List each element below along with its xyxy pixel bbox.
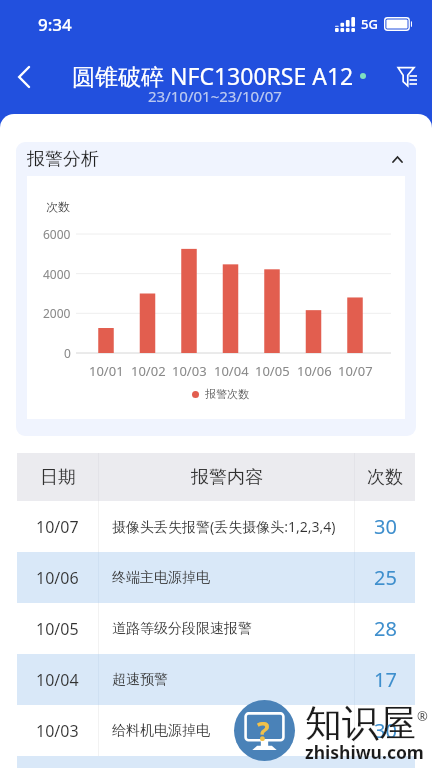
staticText: ® (417, 707, 428, 725)
staticText: 报警内容 (191, 466, 263, 489)
staticText: 次数 (46, 199, 70, 214)
staticText: 28 (374, 615, 397, 642)
staticText: 10/02 (131, 362, 166, 380)
staticText: 知识屋 (305, 700, 416, 747)
staticText: 2000 (43, 305, 71, 321)
button[interactable]: Back (2, 55, 46, 99)
staticText: 次数 (367, 466, 403, 489)
staticText: 4000 (43, 266, 71, 282)
button[interactable]: 10/07 (17, 501, 415, 552)
staticText: 10/04 (214, 362, 249, 380)
staticText: 终端主电源掉电 (112, 569, 210, 587)
staticText: 10/07 (338, 362, 373, 380)
button[interactable]: Collapse (384, 146, 410, 172)
staticText: 17 (374, 666, 397, 693)
staticText: 给料机电源掉电 (112, 722, 210, 740)
button[interactable]: 10/06 (17, 552, 415, 603)
staticText: 9:34 (38, 13, 72, 36)
staticText: 报警分析 (27, 148, 99, 171)
staticText: ? (257, 713, 270, 748)
staticText: 6000 (43, 226, 71, 242)
staticText: 30 (374, 513, 397, 540)
staticText: 10/06 (36, 567, 79, 589)
staticText: 25 (374, 564, 397, 591)
staticText: 圆锥破碎 NFC1300RSE A12 (72, 60, 354, 91)
staticText: 报警次数 (205, 387, 249, 401)
staticText: zhishiwu.com (305, 740, 424, 764)
staticText: 5G (361, 15, 378, 33)
staticText: 10/01 (89, 362, 124, 380)
staticText: 30 (374, 717, 397, 744)
staticText: 23/10/01~23/10/07 (148, 86, 282, 106)
button[interactable]: Filter (385, 55, 427, 97)
staticText: 10/05 (255, 362, 290, 380)
staticText: 10/07 (36, 516, 79, 538)
button[interactable]: 10/04 (17, 654, 415, 705)
staticText: 10/05 (36, 618, 79, 640)
staticText: 超速预警 (112, 671, 168, 689)
staticText: 10/03 (172, 362, 207, 380)
staticText: 0 (64, 345, 71, 361)
staticText: 10/04 (36, 669, 79, 691)
staticText: 日期 (40, 466, 76, 489)
button[interactable]: 10/03 (17, 705, 415, 756)
button[interactable]: 10/05 (17, 603, 415, 654)
staticText: 摄像头丢失报警(丢失摄像头:1,2,3,4) (112, 517, 336, 536)
staticText: 10/06 (297, 362, 332, 380)
staticText: 道路等级分段限速报警 (112, 620, 252, 638)
staticText: 10/03 (36, 720, 79, 742)
